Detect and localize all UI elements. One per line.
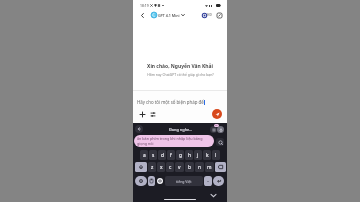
staticText: Hôm nay ChatGPT có thể giúp gì cho bạn? xyxy=(147,72,214,77)
button[interactable]: f xyxy=(167,150,175,160)
staticText: c xyxy=(169,164,172,171)
staticText: HD xyxy=(207,13,212,17)
button[interactable]: Language xyxy=(156,176,164,186)
button[interactable]: Attach xyxy=(138,110,146,118)
button[interactable]: z xyxy=(148,162,156,172)
button[interactable]: Back xyxy=(138,11,146,19)
staticText: m xyxy=(207,164,212,171)
staticText: GPT 4.1 Mini xyxy=(158,13,180,18)
staticText: x xyxy=(160,164,163,171)
button[interactable]: x xyxy=(157,162,165,172)
button[interactable]: j xyxy=(194,150,202,160)
button[interactable]: Shift xyxy=(135,162,147,172)
staticText: z xyxy=(151,164,154,171)
button[interactable]: Send xyxy=(212,109,222,119)
button[interactable]: Back xyxy=(135,125,143,133)
staticText: h xyxy=(188,152,191,159)
button[interactable]: v xyxy=(175,162,184,172)
staticText: j xyxy=(197,152,199,159)
staticText: AI xyxy=(215,124,218,127)
button[interactable]: g xyxy=(176,150,184,160)
staticText: f xyxy=(170,152,172,159)
staticText: a xyxy=(143,152,146,159)
button[interactable]: d xyxy=(158,150,166,160)
staticText: ấn bàn phím trong khi nhập liệu bằng giọ… xyxy=(137,136,203,146)
staticText: d xyxy=(161,152,164,159)
staticText: l xyxy=(215,152,217,159)
staticText: Xin chào, Nguyễn Văn Khải xyxy=(147,63,213,70)
button[interactable]: Clipboard xyxy=(148,176,155,186)
staticText: s xyxy=(152,152,155,159)
staticText: n xyxy=(198,164,201,171)
button[interactable]: c xyxy=(166,162,174,172)
staticText: k xyxy=(206,152,209,159)
button[interactable]: Keyboard xyxy=(216,138,224,146)
button[interactable]: Microphone xyxy=(217,126,224,133)
button[interactable]: s xyxy=(149,150,157,160)
button[interactable]: tiếng Việt xyxy=(165,176,203,186)
button[interactable]: n xyxy=(195,162,204,172)
staticText: tiếng Việt xyxy=(176,179,192,184)
button[interactable]: Emoji xyxy=(135,176,147,186)
staticText: Hãy cho tôi một số biện pháp để xyxy=(137,99,204,105)
button[interactable]: Punctuation xyxy=(204,176,212,186)
button[interactable]: Settings xyxy=(210,126,217,133)
button[interactable]: New chat xyxy=(216,12,222,18)
staticText: b xyxy=(188,164,191,171)
button[interactable]: Voice mode xyxy=(201,12,207,18)
staticText: g xyxy=(179,152,182,159)
button[interactable]: l xyxy=(212,150,220,160)
button[interactable]: a xyxy=(140,150,148,160)
staticText: 18:19 xyxy=(140,3,149,8)
button[interactable]: Enter xyxy=(213,176,224,186)
button[interactable]: b xyxy=(185,162,194,172)
button[interactable]: GPT 4.1 Mini xyxy=(151,11,185,19)
button[interactable]: h xyxy=(185,150,193,160)
button[interactable]: Backspace xyxy=(215,162,226,172)
button[interactable]: k xyxy=(203,150,211,160)
button[interactable]: Hide keyboard xyxy=(209,191,217,199)
button[interactable]: Tools xyxy=(149,110,157,118)
button[interactable]: m xyxy=(205,162,214,172)
staticText: Đang nghe... xyxy=(169,127,193,132)
staticText: v xyxy=(178,164,181,171)
